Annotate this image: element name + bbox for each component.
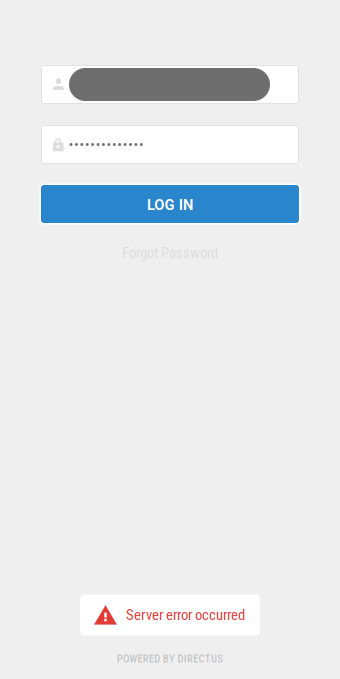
staticText: Forgot Password <box>122 244 218 262</box>
button[interactable]: LOG IN <box>39 183 300 224</box>
button[interactable]: Forgot Password <box>41 245 299 261</box>
button[interactable]: Email <box>41 65 299 104</box>
button[interactable]: Password <box>41 125 299 164</box>
staticText: Server error occurred <box>126 606 245 624</box>
staticText: LOG IN <box>147 196 193 214</box>
staticText: POWERED BY DIRECTUS <box>117 652 223 665</box>
